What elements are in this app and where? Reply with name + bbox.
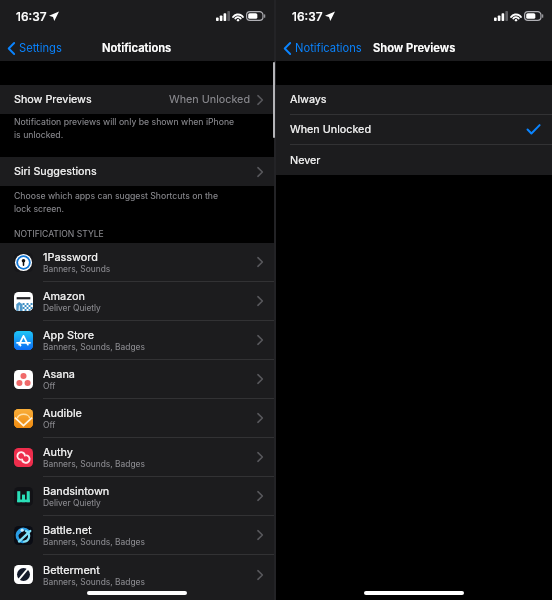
staticText: Audible — [43, 406, 82, 419]
staticText: Bandsintown — [43, 484, 110, 497]
staticText: Banners, Sounds, Badges — [43, 577, 145, 587]
button[interactable]: 1Password — [0, 243, 274, 282]
staticText: Notifications — [102, 41, 172, 55]
staticText: Authy — [43, 445, 73, 458]
staticText: Show Previews — [373, 41, 456, 55]
staticText: Banners, Sounds, Badges — [43, 459, 145, 469]
button[interactable]: Settings — [0, 41, 70, 55]
button[interactable]: Always — [276, 85, 552, 115]
button[interactable]: Notifications — [276, 41, 370, 55]
staticText: Banners, Sounds — [43, 264, 111, 274]
button[interactable]: Never — [276, 145, 552, 175]
staticText: When Unlocked — [290, 123, 371, 136]
button[interactable]: Asana — [0, 360, 274, 399]
staticText: Off — [43, 381, 56, 391]
staticText: Betterment — [43, 563, 100, 576]
staticText: Battle.net — [43, 523, 92, 536]
staticText: Choose which apps can suggest Shortcuts … — [14, 191, 219, 215]
staticText: Banners, Sounds, Badges — [43, 342, 145, 352]
staticText: Always — [290, 93, 327, 106]
staticText: Show Previews — [14, 93, 92, 106]
staticText: 1Password — [43, 250, 98, 263]
button[interactable]: App Store — [0, 321, 274, 360]
staticText: 16:37 — [292, 9, 323, 24]
staticText: Amazon — [43, 289, 85, 302]
button[interactable]: Audible — [0, 399, 274, 438]
staticText: Asana — [43, 367, 75, 380]
staticText: Off — [43, 420, 56, 430]
staticText: Notifications — [295, 41, 362, 55]
button[interactable]: Battle.net — [0, 516, 274, 555]
staticText: 16:37 — [16, 9, 47, 24]
staticText: When Unlocked — [169, 93, 250, 106]
button[interactable]: Amazon — [0, 282, 274, 321]
other: Selected — [527, 124, 540, 135]
staticText: Siri Suggestions — [14, 165, 97, 178]
staticText: Banners, Sounds, Badges — [43, 537, 145, 547]
button[interactable]: Bandsintown — [0, 477, 274, 516]
staticText: Never — [290, 154, 321, 167]
button[interactable]: Betterment — [0, 555, 274, 594]
staticText: App Store — [43, 328, 95, 341]
button[interactable]: Authy — [0, 438, 274, 477]
button[interactable]: When Unlocked — [276, 115, 552, 145]
staticText: NOTIFICATION STYLE — [14, 229, 104, 239]
staticText: Deliver Quietly — [43, 303, 101, 313]
staticText: Settings — [19, 41, 62, 55]
staticText: Notification previews will only be shown… — [14, 117, 235, 141]
staticText: Deliver Quietly — [43, 498, 101, 508]
button[interactable]: Siri Suggestions — [0, 157, 274, 186]
button[interactable]: Show Previews — [0, 85, 274, 114]
